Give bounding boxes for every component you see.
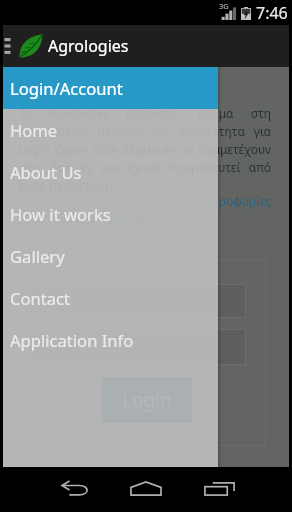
staticText: Gallery [10, 245, 65, 268]
staticText: Agrologies [48, 35, 129, 57]
button[interactable]: Home [124, 473, 168, 503]
button[interactable]: Open navigation drawer [3, 35, 15, 57]
button[interactable]: Login/Account [0, 67, 218, 109]
staticText: To Agrologies βρίσκεται ακόμα στη δοκιμα… [19, 105, 271, 193]
button[interactable]: Back [53, 473, 97, 503]
staticText: Contact [10, 287, 71, 310]
staticText: Login [122, 387, 172, 413]
staticText: 7:46 [256, 2, 288, 24]
staticText: Application Info [10, 329, 134, 352]
button[interactable]: How it works [0, 193, 218, 235]
button[interactable]: Home [0, 109, 218, 151]
staticText: Login/Account [10, 77, 123, 100]
staticText: 3G [219, 1, 229, 11]
staticText: About Us [10, 161, 82, 184]
button[interactable]: Contact [0, 277, 218, 319]
button[interactable]: About Us [0, 151, 218, 193]
staticText: How it works [10, 203, 111, 226]
button[interactable]: Application Info [0, 319, 218, 361]
staticText: Home [10, 119, 58, 142]
button[interactable]: Για περισσότερες πληροφορίες επικοινωνήσ… [19, 193, 271, 227]
button[interactable]: Gallery [0, 235, 218, 277]
button[interactable]: Recent apps [197, 473, 241, 503]
